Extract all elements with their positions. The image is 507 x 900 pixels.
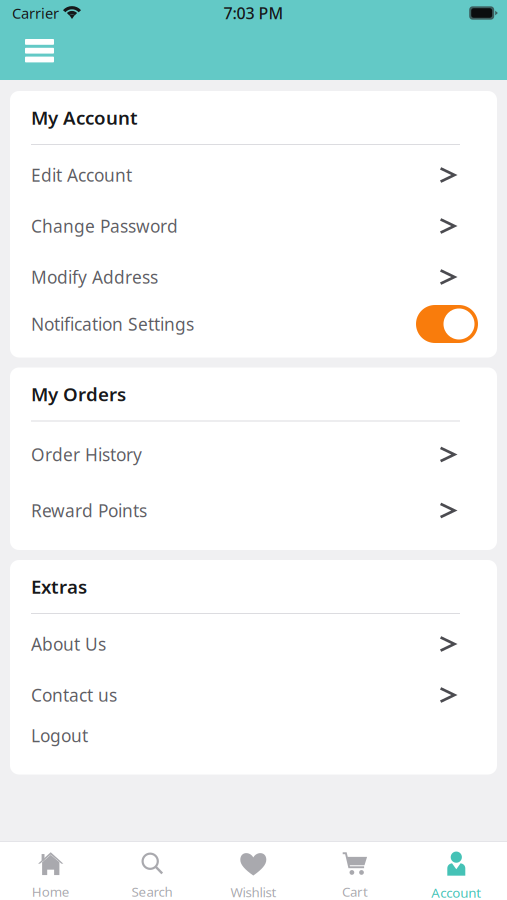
staticText: Change Password (31, 214, 178, 237)
staticText: Carrier (12, 3, 59, 23)
staticText: Order History (31, 443, 142, 466)
staticText: Extras (31, 574, 87, 599)
staticText: Wishlist (230, 883, 276, 900)
staticText: Cart (342, 883, 368, 900)
staticText: Reward Points (31, 499, 147, 522)
staticText: My Account (31, 105, 138, 130)
button[interactable]: Wishlist (203, 841, 304, 900)
button[interactable]: Reward Points (10, 483, 497, 538)
staticText: Notification Settings (31, 312, 194, 335)
button[interactable]: Order History (10, 426, 497, 483)
staticText: Account (431, 884, 481, 900)
button[interactable]: Home (0, 841, 101, 900)
staticText: My Orders (31, 382, 126, 406)
staticText: 7:03 PM (223, 2, 283, 24)
staticText: Logout (31, 724, 88, 747)
staticText: About Us (31, 632, 106, 655)
staticText: Home (32, 883, 70, 900)
button[interactable]: Cart (304, 841, 406, 900)
staticText: Contact us (31, 683, 117, 706)
button[interactable]: Menu (0, 26, 68, 62)
button[interactable]: Change Password (10, 200, 497, 251)
staticText: Search (132, 883, 173, 900)
button[interactable]: Search (101, 841, 203, 900)
staticText: Edit Account (31, 163, 132, 186)
button[interactable]: Edit Account (10, 149, 497, 200)
button[interactable]: Modify Address (10, 251, 497, 302)
button[interactable]: Contact us (10, 669, 497, 720)
staticText: Modify Address (31, 265, 158, 288)
button[interactable]: Logout (10, 720, 497, 750)
button[interactable]: Account (406, 841, 507, 900)
button[interactable]: About Us (10, 618, 497, 669)
button[interactable]: On (10, 302, 497, 345)
